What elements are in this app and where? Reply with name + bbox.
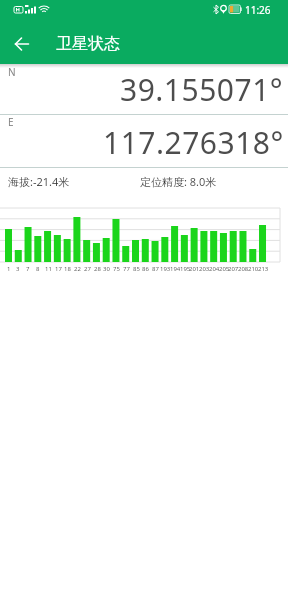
staticText: 27 — [84, 265, 91, 273]
staticText: 11:26 — [245, 3, 271, 17]
staticText: 3 — [16, 265, 20, 273]
staticText: 87 — [152, 265, 159, 273]
staticText: 17 — [55, 265, 62, 273]
staticText: 204 — [209, 265, 219, 273]
staticText: 1 — [7, 265, 11, 273]
staticText: 卫星状态 — [56, 34, 120, 54]
staticText: 194 — [170, 265, 180, 273]
staticText: 201 — [189, 265, 199, 273]
staticText: 定位精度: 8.0米 — [140, 174, 217, 189]
staticText: 207 — [228, 265, 238, 273]
staticText: 39.155071° — [120, 69, 284, 110]
staticText: 28 — [94, 265, 101, 273]
staticText: 7 — [26, 265, 30, 273]
staticText: 30 — [103, 265, 110, 273]
staticText: 海拔:-21.4米 — [8, 174, 70, 189]
staticText: 203 — [199, 265, 209, 273]
staticText: 22 — [74, 265, 81, 273]
staticText: 18 — [64, 265, 71, 273]
staticText: 117.276318° — [103, 122, 284, 163]
staticText: 8 — [36, 265, 40, 273]
staticText: 195 — [180, 265, 190, 273]
staticText: 77 — [123, 265, 130, 273]
staticText: 193 — [160, 265, 170, 273]
staticText: N — [8, 65, 16, 79]
staticText: 208 — [238, 265, 248, 273]
staticText: 86 — [142, 265, 149, 273]
button[interactable] — [8, 30, 36, 58]
staticText: 205 — [219, 265, 229, 273]
staticText: E — [8, 115, 14, 129]
staticText: 85 — [133, 265, 140, 273]
staticText: 75 — [113, 265, 120, 273]
staticText: 210 — [248, 265, 258, 273]
staticText: 213 — [258, 265, 268, 273]
staticText: 11 — [45, 265, 52, 273]
